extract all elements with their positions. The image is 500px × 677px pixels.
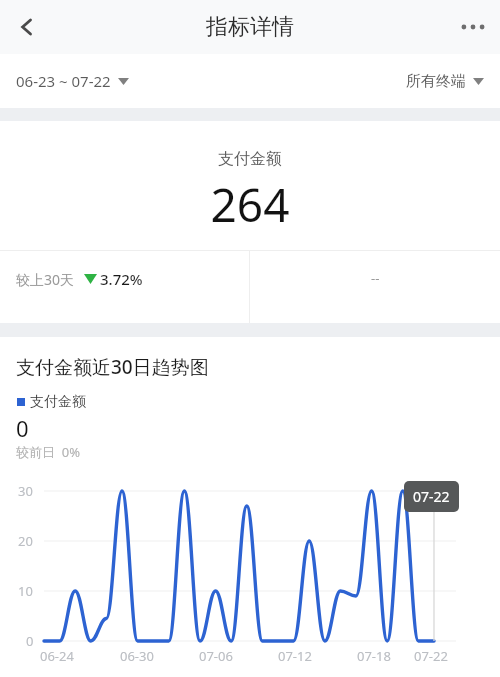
staticText: 06-23 ~ 07-22 xyxy=(16,71,111,91)
staticText: 07-22 xyxy=(413,487,450,506)
staticText: 06-24 xyxy=(40,647,74,665)
staticText: 07-12 xyxy=(278,647,312,665)
staticText: 264 xyxy=(0,173,500,236)
staticText: 06-30 xyxy=(120,647,154,665)
staticText: 支付金额近30日趋势图 xyxy=(16,354,209,380)
staticText: 3.72% xyxy=(100,269,143,289)
button[interactable]: 支付金额 xyxy=(17,393,86,411)
button[interactable]: More options xyxy=(446,0,500,54)
button[interactable]: 所有终端 xyxy=(406,66,484,97)
staticText: 30 xyxy=(18,482,33,500)
staticText: -- xyxy=(371,269,380,287)
button[interactable]: Back xyxy=(0,0,54,54)
staticText: 07-06 xyxy=(199,647,233,665)
staticText: 0 xyxy=(26,632,34,650)
staticText: 较前日 0% xyxy=(16,443,80,461)
staticText: 支付金额 xyxy=(0,149,500,169)
button[interactable]: 较上30天 xyxy=(16,269,143,289)
button[interactable]: 06-23 ~ 07-22 xyxy=(16,65,129,97)
staticText: 07-22 xyxy=(414,647,448,665)
staticText: 0 xyxy=(16,413,29,443)
staticText: 20 xyxy=(18,532,33,550)
staticText: 10 xyxy=(18,582,33,600)
button[interactable]: 07-22 xyxy=(404,481,459,512)
staticText: 支付金额 xyxy=(30,393,86,411)
staticText: 指标详情 xyxy=(206,13,294,41)
staticText: 较上30天 xyxy=(16,270,75,289)
staticText: 所有终端 xyxy=(406,72,466,91)
staticText: 07-18 xyxy=(357,647,391,665)
